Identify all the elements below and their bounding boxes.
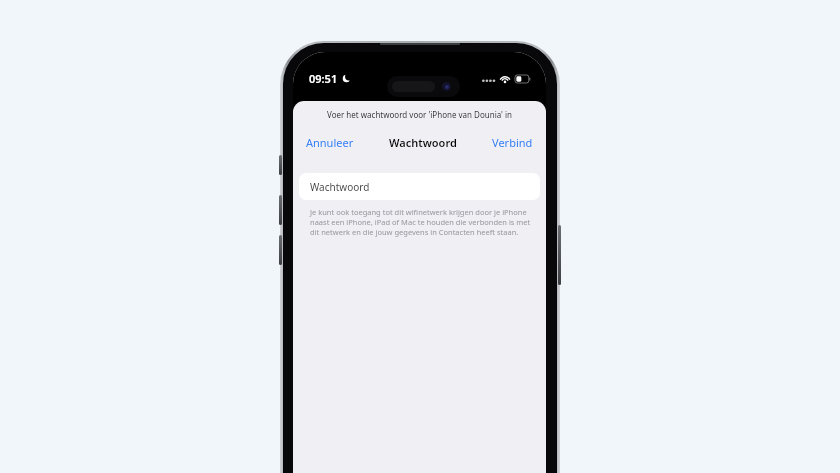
- staticText: Je kunt ook toegang tot dit wifinetwerk …: [310, 207, 532, 237]
- staticText: Annuleer: [306, 135, 354, 150]
- button[interactable]: Volume down: [279, 235, 282, 265]
- staticText: Verbind: [492, 135, 533, 150]
- staticText: Wachtwoord: [389, 135, 457, 150]
- button[interactable]: Volume up: [279, 195, 282, 225]
- button[interactable]: Wachtwoord: [299, 173, 540, 200]
- button[interactable]: Annuleer: [303, 133, 357, 152]
- staticText: Voer het wachtwoord voor 'iPhone van Dou…: [303, 109, 536, 120]
- button[interactable]: Verbind: [489, 133, 536, 152]
- button[interactable]: Side button: [558, 225, 561, 285]
- staticText: 09:51: [309, 71, 338, 86]
- staticText: Wachtwoord: [310, 180, 370, 194]
- button[interactable]: Ring silent switch: [279, 155, 282, 175]
